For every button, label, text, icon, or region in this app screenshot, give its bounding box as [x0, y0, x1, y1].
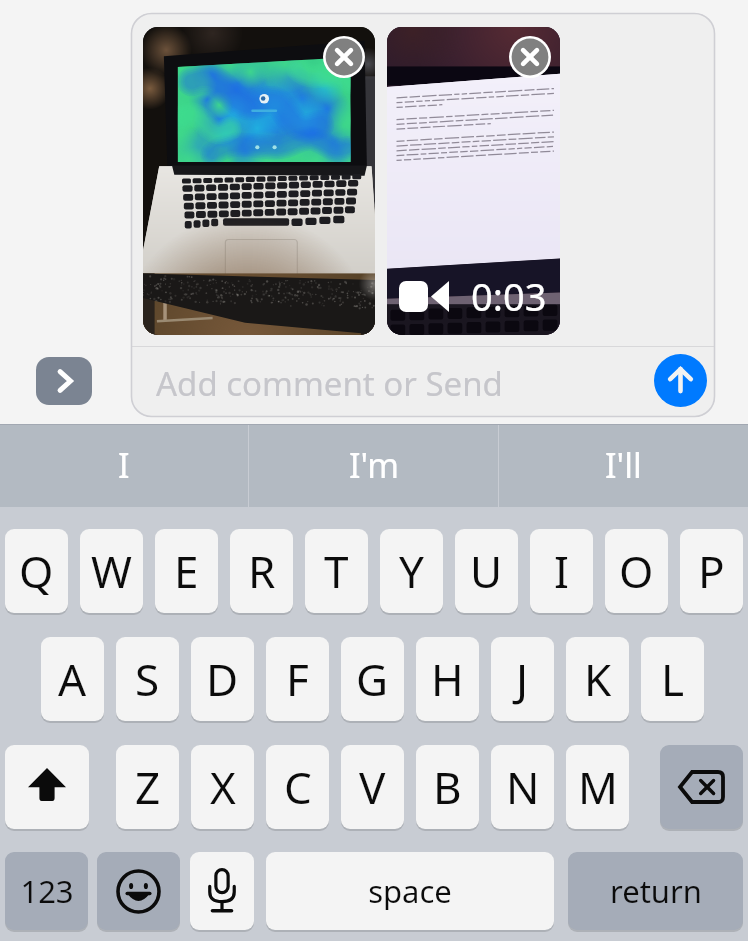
- button[interactable]: S: [116, 637, 179, 721]
- staticText: space: [368, 870, 452, 912]
- button[interactable]: space: [266, 852, 554, 930]
- staticText: O: [619, 541, 654, 601]
- button[interactable]: I'm: [249, 425, 498, 504]
- button[interactable]: H: [416, 637, 479, 721]
- button[interactable]: Show more: [36, 357, 92, 405]
- button[interactable]: T: [305, 529, 368, 613]
- staticText: F: [286, 649, 309, 709]
- button[interactable]: Q: [5, 529, 68, 613]
- button[interactable]: U: [455, 529, 518, 613]
- button[interactable]: L: [641, 637, 704, 721]
- staticText: I'll: [605, 442, 642, 488]
- button[interactable]: Dictate: [190, 852, 254, 930]
- staticText: H: [431, 649, 464, 709]
- button[interactable]: 123: [5, 852, 88, 930]
- staticText: T: [324, 541, 349, 601]
- button[interactable]: A: [41, 637, 104, 721]
- button[interactable]: Y: [380, 529, 443, 613]
- staticText: V: [359, 757, 386, 817]
- staticText: return: [610, 870, 702, 912]
- staticText: X: [210, 757, 236, 817]
- staticText: Y: [399, 541, 424, 601]
- button[interactable]: E: [155, 529, 218, 613]
- staticText: I: [118, 442, 130, 488]
- staticText: K: [584, 649, 612, 709]
- button[interactable]: R: [230, 529, 293, 613]
- staticText: G: [356, 649, 389, 709]
- staticText: E: [174, 541, 199, 601]
- button[interactable]: Emoji: [97, 852, 180, 930]
- staticText: U: [470, 541, 503, 601]
- button[interactable]: G: [341, 637, 404, 721]
- staticText: 123: [20, 870, 74, 912]
- staticText: Add comment or Send: [156, 361, 503, 406]
- button[interactable]: F: [266, 637, 329, 721]
- button[interactable]: B: [416, 745, 479, 829]
- button[interactable]: return: [568, 852, 743, 930]
- staticText: N: [506, 757, 540, 817]
- staticText: Q: [19, 541, 54, 601]
- staticText: A: [58, 649, 87, 709]
- staticText: S: [135, 649, 160, 709]
- button[interactable]: Add comment or Send: [131, 347, 715, 417]
- button[interactable]: I'll: [499, 425, 748, 504]
- staticText: C: [284, 757, 312, 817]
- staticText: J: [516, 649, 529, 709]
- staticText: D: [206, 649, 239, 709]
- button[interactable]: Remove attachment: [509, 36, 551, 78]
- button[interactable]: Backspace: [660, 745, 743, 829]
- button[interactable]: M: [566, 745, 629, 829]
- button[interactable]: W: [80, 529, 143, 613]
- button[interactable]: N: [491, 745, 554, 829]
- button[interactable]: I: [0, 425, 248, 504]
- button[interactable]: C: [266, 745, 329, 829]
- button[interactable]: J: [491, 637, 554, 721]
- staticText: R: [248, 541, 276, 601]
- button[interactable]: D: [191, 637, 254, 721]
- staticText: Z: [135, 757, 161, 817]
- button[interactable]: Photo attachment: [143, 27, 375, 335]
- button[interactable]: Remove attachment: [323, 36, 365, 78]
- staticText: I'm: [349, 442, 399, 488]
- button[interactable]: P: [680, 529, 743, 613]
- staticText: 0:03: [471, 270, 547, 322]
- staticText: I: [554, 541, 569, 601]
- button[interactable]: Shift: [5, 745, 89, 829]
- button[interactable]: Z: [116, 745, 179, 829]
- button[interactable]: Send: [654, 354, 707, 407]
- staticText: M: [578, 757, 618, 817]
- button[interactable]: O: [605, 529, 668, 613]
- staticText: L: [661, 649, 685, 709]
- button[interactable]: Video attachment, 0:03: [387, 27, 560, 335]
- button[interactable]: I: [530, 529, 593, 613]
- staticText: B: [433, 757, 462, 817]
- button[interactable]: K: [566, 637, 629, 721]
- staticText: P: [698, 541, 725, 601]
- button[interactable]: V: [341, 745, 404, 829]
- button[interactable]: X: [191, 745, 254, 829]
- staticText: W: [91, 541, 132, 601]
